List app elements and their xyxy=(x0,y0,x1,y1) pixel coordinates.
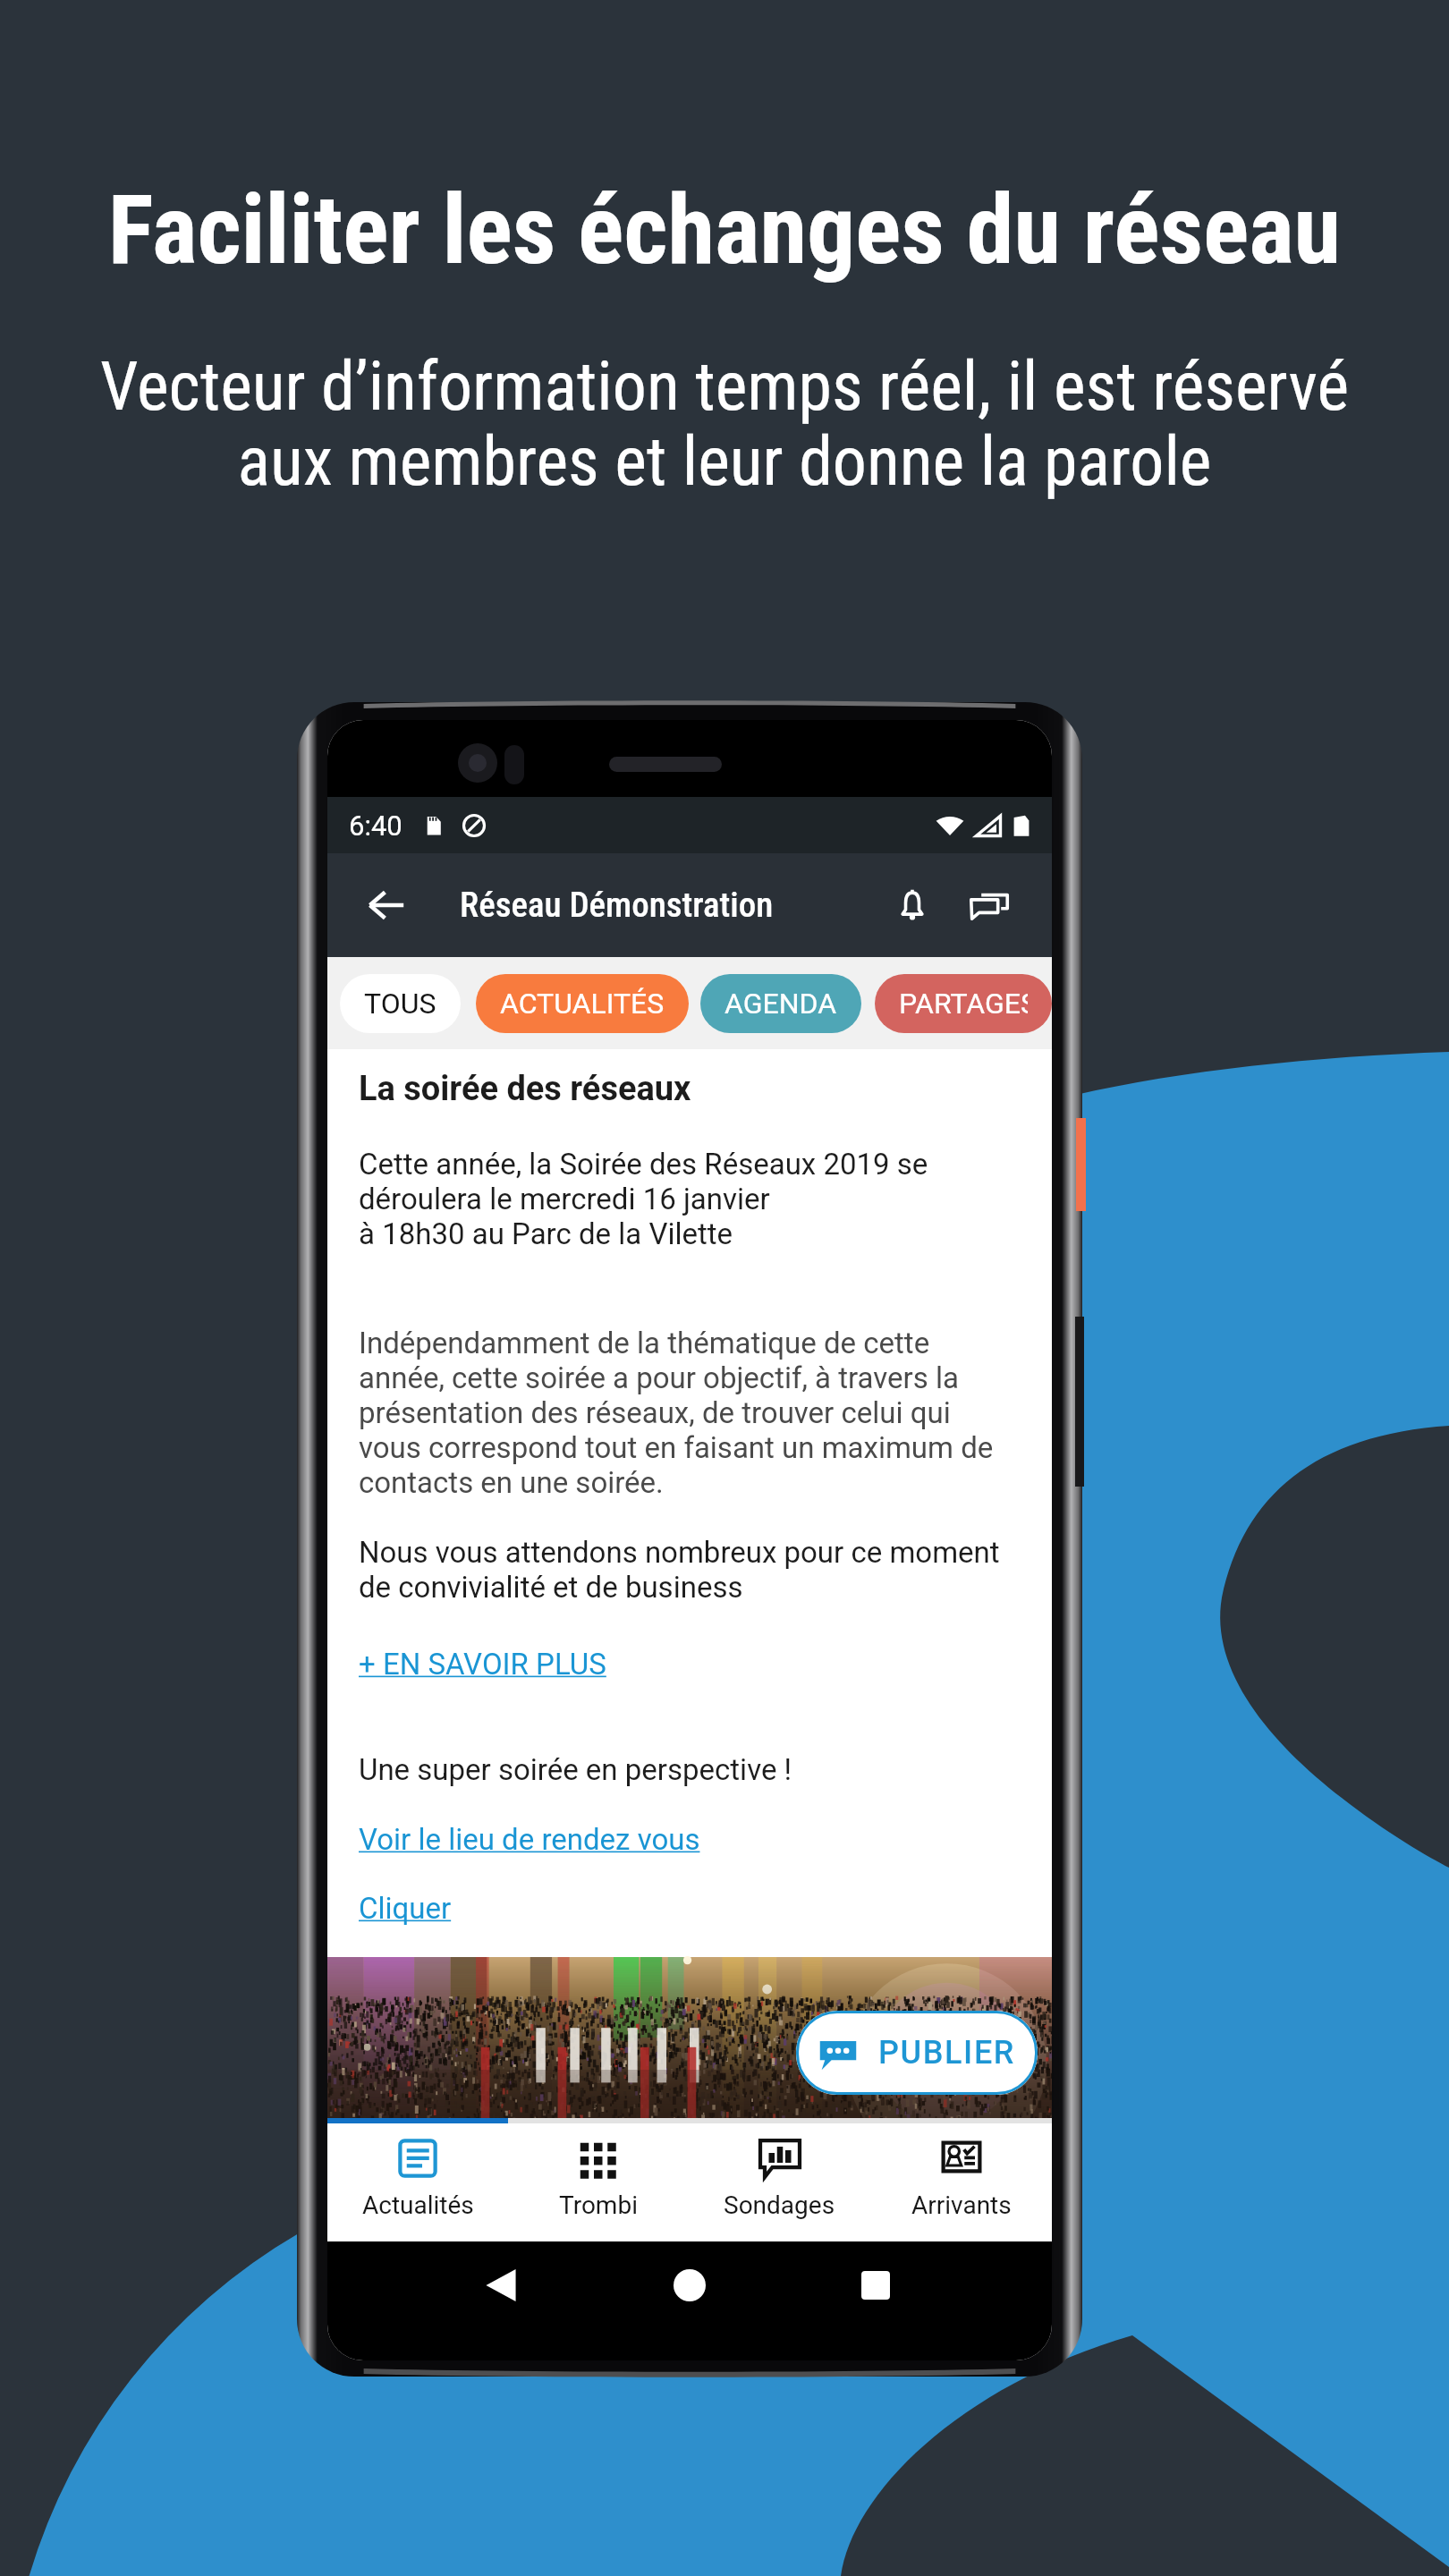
staticText: ACTUALITÉS xyxy=(500,987,665,1021)
staticText: Voir le lieu de rendez vous xyxy=(359,1822,700,1857)
staticText: PARTAGES xyxy=(899,987,1028,1021)
staticText: Cette année, la Soirée des Réseaux 2019 … xyxy=(359,1147,928,1251)
staticText: Sondages xyxy=(724,2190,835,2220)
staticText: Indépendamment de la thématique de cette… xyxy=(359,1326,994,1500)
button[interactable]: Arrivants xyxy=(870,2123,1052,2241)
button[interactable]: Notifications xyxy=(869,862,955,948)
staticText: AGENDA xyxy=(724,987,837,1021)
staticText: Trombi xyxy=(559,2190,638,2220)
button[interactable]: Home xyxy=(649,2245,730,2326)
staticText: 6:40 xyxy=(349,809,402,842)
button[interactable]: PUBLIER xyxy=(796,2011,1038,2095)
staticText: PUBLIER xyxy=(878,2034,1016,2072)
button[interactable]: Actualités xyxy=(327,2123,508,2241)
staticText: + EN SAVOIR PLUS xyxy=(359,1647,606,1682)
staticText: Une super soirée en perspective ! xyxy=(359,1752,792,1787)
staticText: Actualités xyxy=(362,2190,474,2220)
staticText: Arrivants xyxy=(911,2190,1012,2220)
staticText: Vecteur d’information temps réel, il est… xyxy=(0,346,1449,501)
staticText: Cliquer xyxy=(359,1891,452,1926)
button[interactable]: Messages xyxy=(946,862,1032,948)
button[interactable]: Sondages xyxy=(689,2123,870,2241)
button[interactable]: Recent apps xyxy=(835,2245,916,2326)
button[interactable]: Back xyxy=(342,853,431,957)
button[interactable]: Back xyxy=(461,2245,541,2326)
button[interactable]: ACTUALITÉS xyxy=(476,974,689,1033)
button[interactable]: Cliquer xyxy=(359,1891,452,1926)
staticText: La soirée des réseaux xyxy=(359,1069,691,1109)
button[interactable]: AGENDA xyxy=(700,974,861,1033)
staticText: TOUS xyxy=(364,987,436,1021)
staticText: Faciliter les échanges du réseau xyxy=(0,174,1449,286)
button[interactable]: Voir le lieu de rendez vous xyxy=(359,1822,700,1857)
button[interactable]: TOUS xyxy=(340,974,461,1033)
button[interactable]: PARTAGES xyxy=(875,974,1052,1033)
staticText: Nous vous attendons nombreux pour ce mom… xyxy=(359,1535,1000,1605)
button[interactable]: Trombi xyxy=(508,2123,689,2241)
button[interactable]: + EN SAVOIR PLUS xyxy=(359,1647,606,1682)
staticText: Réseau Démonstration xyxy=(460,885,774,926)
